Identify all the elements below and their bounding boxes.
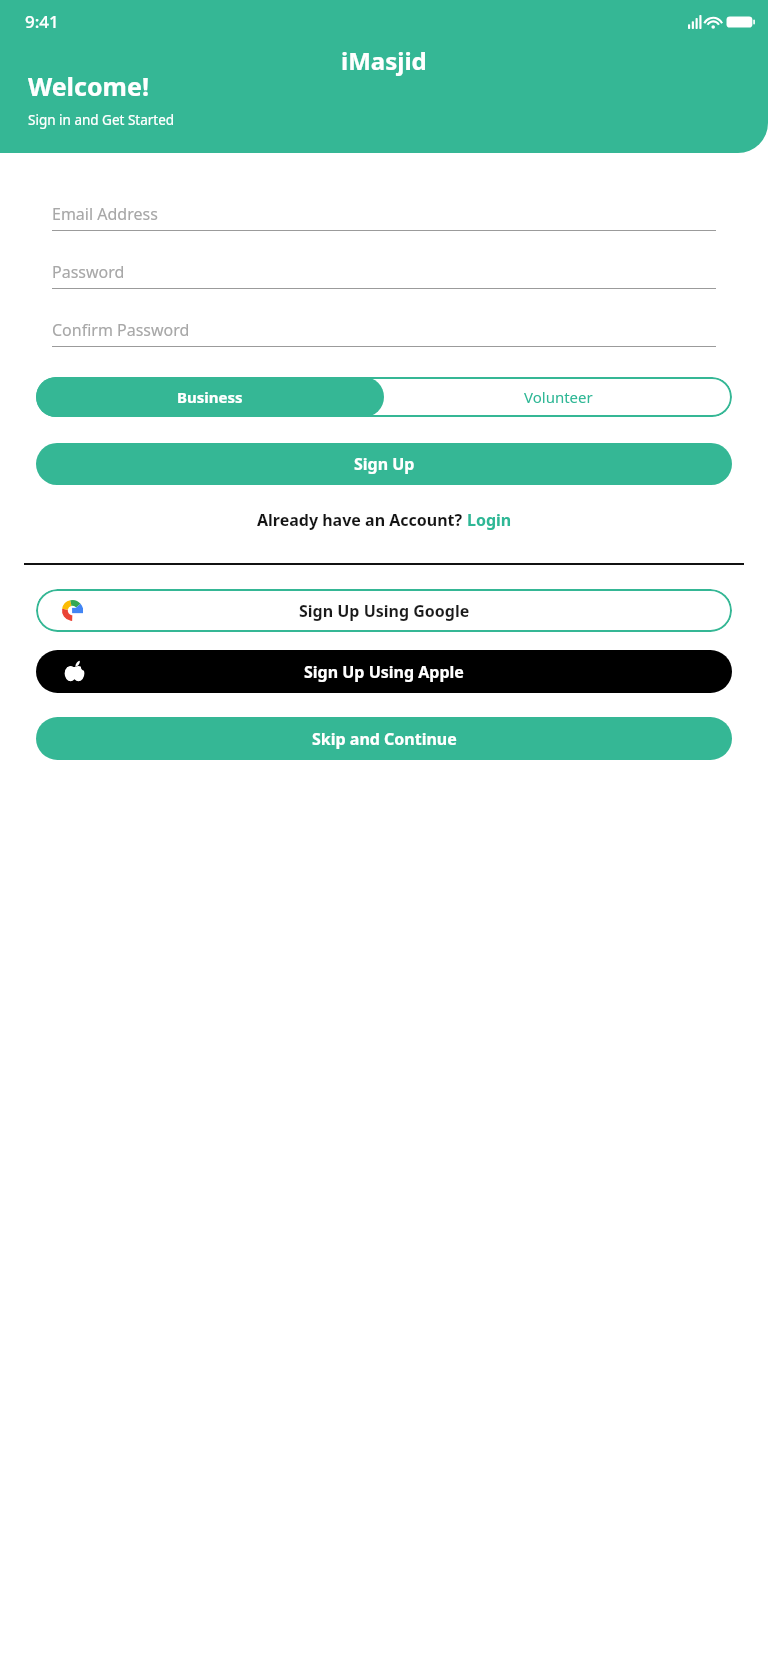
staticText: Sign Up Using Apple bbox=[304, 661, 464, 683]
button[interactable]: Sign Up bbox=[36, 443, 732, 485]
staticText: Welcome! bbox=[28, 69, 149, 103]
staticText: Sign Up Using Google bbox=[299, 600, 470, 622]
staticText: Password bbox=[52, 261, 125, 283]
staticText: Already have an Account? bbox=[257, 509, 467, 531]
staticText: iMasjid bbox=[341, 44, 427, 77]
button[interactable]: Password bbox=[52, 261, 716, 289]
staticText: Sign in and Get Started bbox=[28, 111, 175, 129]
staticText: Login bbox=[467, 509, 512, 531]
staticText: 9:41 bbox=[25, 10, 59, 33]
button[interactable]: Business bbox=[36, 377, 384, 417]
button[interactable]: Email Address bbox=[52, 203, 716, 231]
button[interactable]: Sign Up Using Apple bbox=[36, 650, 732, 693]
staticText: Email Address bbox=[52, 203, 158, 225]
button[interactable]: Confirm Password bbox=[52, 319, 716, 347]
staticText: Sign Up bbox=[354, 453, 415, 475]
staticText: Skip and Continue bbox=[312, 728, 457, 750]
button[interactable]: Sign Up Using Google bbox=[36, 589, 732, 632]
staticText: Volunteer bbox=[524, 387, 593, 407]
staticText: Confirm Password bbox=[52, 319, 190, 341]
button[interactable]: Volunteer bbox=[384, 377, 732, 417]
staticText: Business bbox=[177, 387, 243, 407]
button[interactable]: Skip and Continue bbox=[36, 717, 732, 760]
button[interactable]: Already have an Account? bbox=[0, 509, 768, 531]
